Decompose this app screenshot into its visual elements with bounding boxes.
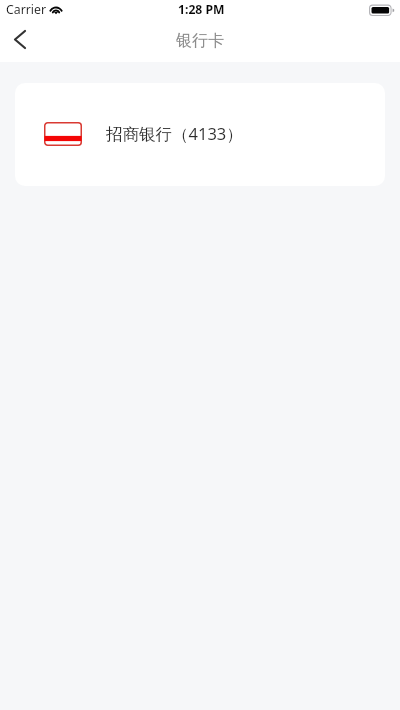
button[interactable]: Back: [0, 20, 42, 62]
staticText: 招商银行（4133）: [106, 122, 243, 145]
button[interactable]: 招商银行（4133）: [15, 83, 385, 186]
staticText: Carrier: [6, 1, 47, 18]
staticText: 1:28 PM: [178, 1, 225, 18]
staticText: 银行卡: [176, 31, 224, 51]
